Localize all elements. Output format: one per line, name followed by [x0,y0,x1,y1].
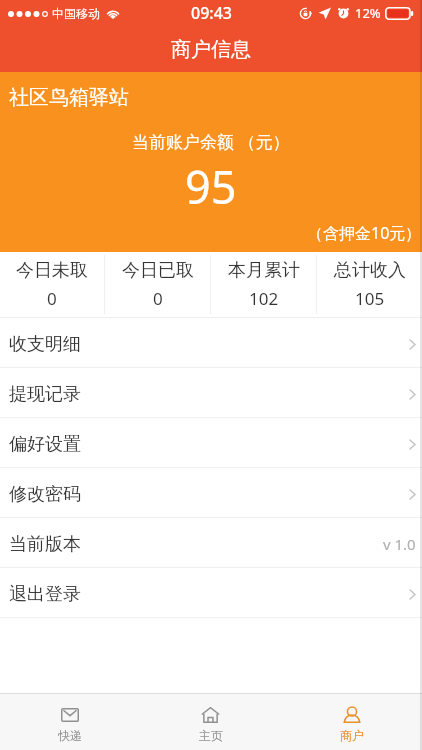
staticText: 今日未取 [16,259,88,282]
button[interactable]: 今日未取 [0,252,104,317]
staticText: 主页 [199,728,223,743]
staticText: （含押金10元） [307,222,422,244]
button[interactable]: 今日已取 [105,252,210,317]
button[interactable]: 快递 [0,694,140,750]
staticText: 今日已取 [122,259,194,282]
button[interactable]: 修改密码 [0,468,422,517]
staticText: 中国移动 [52,6,100,21]
staticText: v 1.0 [383,534,416,554]
staticText: 总计收入 [334,259,406,282]
staticText: 快递 [58,728,82,743]
button[interactable]: 收支明细 [0,318,422,367]
staticText: 105 [355,287,385,310]
button[interactable]: 商户 [281,694,422,750]
button[interactable]: 提现记录 [0,368,422,417]
button[interactable]: 退出登录 [0,568,422,617]
staticText: 当前版本 [9,533,81,556]
staticText: 09:43 [191,2,232,24]
staticText: 修改密码 [9,483,81,506]
staticText: 102 [249,287,279,310]
staticText: 退出登录 [9,583,81,606]
staticText: 95 [185,156,237,217]
staticText: 当前账户余额 （元） [132,130,290,153]
button[interactable]: 总计收入 [317,252,422,317]
staticText: 0 [47,287,57,310]
button[interactable]: 本月累计 [211,252,316,317]
button[interactable]: 当前版本 [0,518,422,567]
button[interactable]: 偏好设置 [0,418,422,467]
staticText: 社区鸟箱驿站 [9,85,129,110]
staticText: 商户 [340,728,364,743]
staticText: 12% [355,4,381,22]
staticText: 0 [153,287,163,310]
staticText: 提现记录 [9,383,81,406]
button[interactable]: 主页 [140,694,281,750]
staticText: 偏好设置 [9,433,81,456]
staticText: 收支明细 [9,333,81,356]
staticText: 商户信息 [171,37,251,62]
staticText: 本月累计 [228,259,300,282]
